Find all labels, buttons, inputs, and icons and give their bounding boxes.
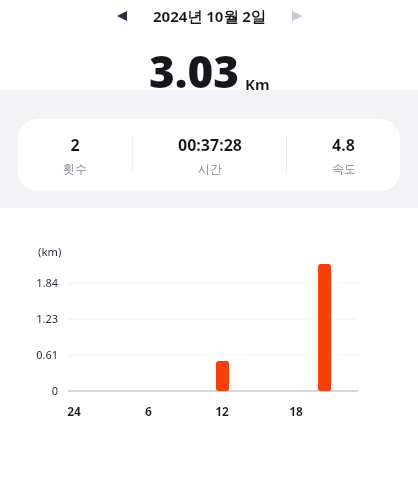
button[interactable]: Next day <box>284 3 310 29</box>
staticText: 00:37:28 <box>178 134 242 156</box>
staticText: 18 <box>289 403 303 419</box>
staticText: 1.84 <box>36 275 58 290</box>
staticText: 6 <box>145 403 152 419</box>
staticText: 2024년 10월 2일 <box>153 6 266 26</box>
staticText: 속도 <box>332 161 356 176</box>
button[interactable]: 00:37:28 <box>133 134 286 176</box>
button[interactable]: 4.8 <box>287 134 400 176</box>
staticText: 2 <box>70 134 80 156</box>
staticText: 0.61 <box>36 347 58 362</box>
button[interactable]: Previous day <box>109 3 135 29</box>
staticText: 12 <box>215 403 229 419</box>
staticText: 3.03 <box>149 41 240 101</box>
staticText: 횟수 <box>63 161 87 176</box>
staticText: (km) <box>38 244 62 259</box>
staticText: Km <box>245 74 270 94</box>
staticText: 0 <box>51 383 58 398</box>
staticText: 1.23 <box>36 311 58 326</box>
button[interactable]: 2 <box>18 119 400 191</box>
staticText: 24 <box>67 403 81 419</box>
button[interactable]: 2 <box>18 134 132 176</box>
staticText: 4.8 <box>332 134 355 156</box>
staticText: 시간 <box>198 161 222 176</box>
